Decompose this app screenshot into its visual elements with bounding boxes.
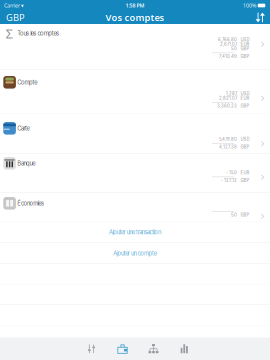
staticText: 5,479.80 xyxy=(219,137,237,142)
staticText: GBP xyxy=(240,46,249,51)
staticText: USD xyxy=(240,37,249,42)
staticText: Carrier ▾ xyxy=(4,2,24,9)
button[interactable]: Économies xyxy=(0,193,270,221)
staticText: EUR xyxy=(240,170,249,175)
staticText: 4,127.39 xyxy=(219,144,237,149)
staticText: 2,671.07 xyxy=(220,42,237,47)
staticText: GBP xyxy=(240,54,249,59)
staticText: Tous les comptes xyxy=(17,30,59,37)
button[interactable]: GBP xyxy=(0,11,31,24)
staticText: - 150 xyxy=(226,170,237,175)
staticText: Σ xyxy=(6,24,14,42)
staticText: 1:58 PM xyxy=(125,2,144,9)
staticText: Compte xyxy=(17,79,37,86)
button[interactable]: Accounts xyxy=(107,337,138,360)
staticText: GBP xyxy=(240,178,249,183)
staticText: USD xyxy=(240,137,249,142)
staticText: 6,766.80 xyxy=(218,37,237,42)
staticText: Carte xyxy=(17,125,30,132)
button[interactable]: Carte xyxy=(0,113,270,153)
staticText: 2,821.07 xyxy=(219,96,237,101)
button[interactable]: Ajouter un compte xyxy=(0,243,270,263)
staticText: 50 xyxy=(231,46,237,51)
button[interactable]: Compte xyxy=(0,70,270,113)
staticText: 7,410.49 xyxy=(219,54,237,59)
staticText: Ajouter une transaction xyxy=(109,228,161,235)
staticText: 3,360.23 xyxy=(217,103,237,108)
staticText: 100% xyxy=(243,2,256,9)
staticText: Vos comptes xyxy=(105,11,164,24)
button[interactable]: Ajouter une transaction xyxy=(0,221,270,242)
staticText: - 127.12 xyxy=(221,178,237,183)
staticText: GBP xyxy=(240,212,249,217)
staticText: GBP xyxy=(6,11,25,24)
button[interactable]: Sort accounts xyxy=(250,11,270,24)
button[interactable]: Σ xyxy=(0,24,270,69)
staticText: EUR xyxy=(240,42,249,47)
button[interactable]: Budgets xyxy=(76,337,107,360)
staticText: 1,287 xyxy=(226,91,237,96)
button[interactable]: Banque xyxy=(0,154,270,192)
button[interactable]: Reports xyxy=(169,337,200,360)
staticText: GBP xyxy=(240,103,249,108)
staticText: Banque xyxy=(17,160,35,167)
staticText: GBP xyxy=(240,144,249,149)
button[interactable]: Categories xyxy=(138,337,169,360)
staticText: EUR xyxy=(240,96,249,101)
staticText: Économies xyxy=(17,200,44,207)
staticText: Ajouter un compte xyxy=(113,250,157,257)
staticText: USD xyxy=(240,91,249,96)
staticText: 50 xyxy=(231,212,237,217)
